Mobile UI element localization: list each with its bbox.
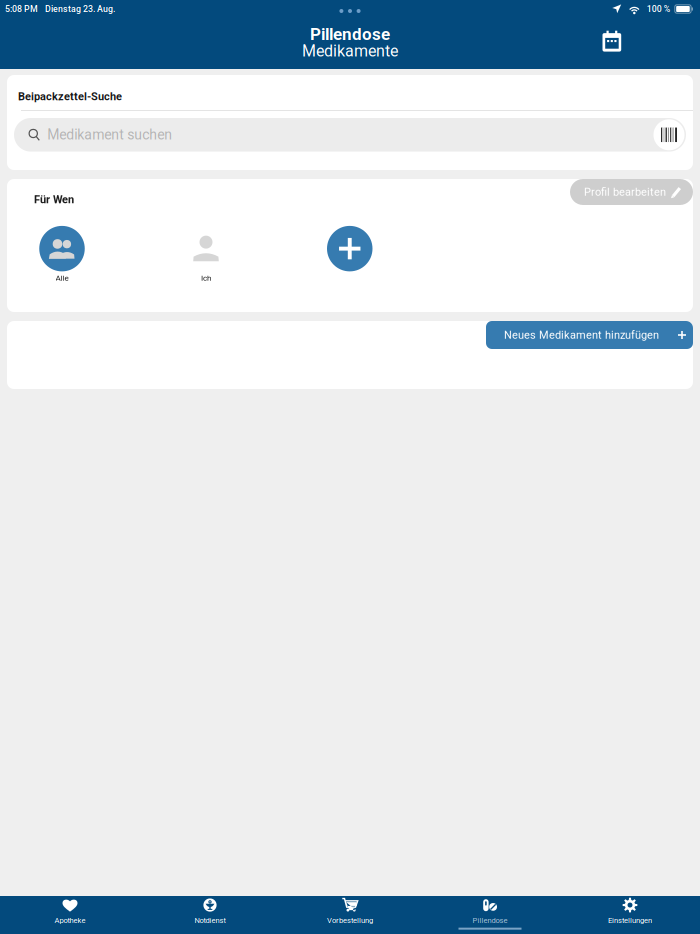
button[interactable]: Profil hinzufügen [327, 226, 372, 271]
staticText: Medikamente [302, 42, 398, 60]
staticText: Medikament suchen [47, 127, 172, 143]
staticText: Vorbestellung [327, 916, 373, 925]
staticText: 5:08 PM [5, 4, 38, 14]
staticText: Ich [201, 273, 211, 283]
button[interactable]: Neues Medikament hinzufügen [486, 321, 693, 349]
staticText: Notdienst [194, 916, 225, 925]
staticText: 100 % [647, 4, 670, 14]
staticText: Profil bearbeiten [584, 186, 666, 198]
button[interactable]: Vorbestellung [280, 896, 420, 934]
button[interactable]: Kalender [590, 22, 634, 64]
staticText: Pillendose [472, 916, 507, 925]
button[interactable]: Notdienst [140, 896, 280, 934]
button[interactable]: Medikament suchen [14, 118, 686, 152]
staticText: Apotheke [54, 916, 85, 925]
button[interactable]: Pillendose [420, 896, 560, 934]
button[interactable]: Apotheke [0, 896, 140, 934]
staticText: Neues Medikament hinzufügen [504, 329, 659, 341]
staticText: Pillendose [310, 24, 390, 44]
button[interactable]: Einstellungen [560, 896, 700, 934]
button[interactable]: Alle [39, 226, 85, 283]
staticText: Einstellungen [608, 916, 652, 925]
button[interactable]: Profil bearbeiten [570, 179, 693, 205]
staticText: Dienstag 23. Aug. [45, 4, 115, 14]
staticText: Beipackzettel-Suche [18, 90, 122, 103]
button[interactable]: Ich [183, 226, 229, 283]
staticText: Für Wen [34, 193, 74, 206]
staticText: Alle [55, 273, 68, 283]
